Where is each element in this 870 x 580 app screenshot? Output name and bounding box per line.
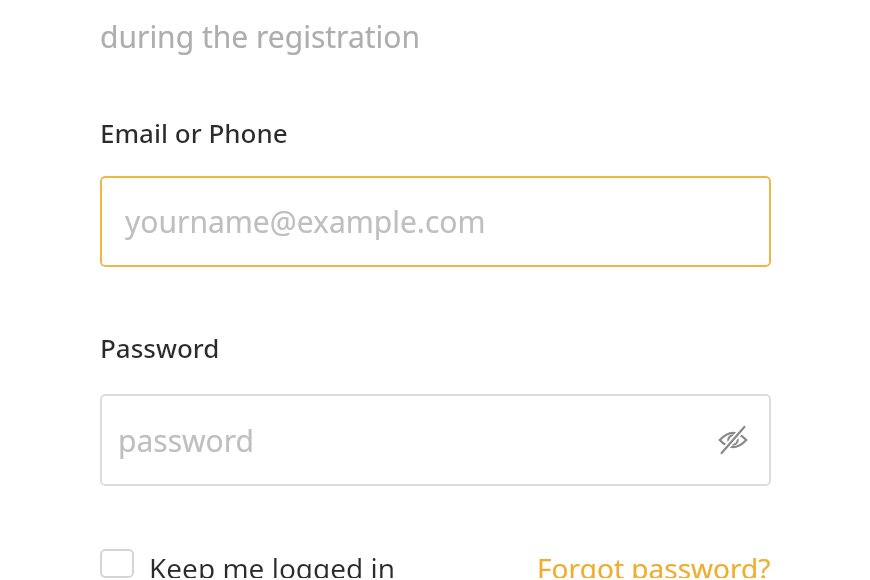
- button[interactable]: Forgot password?: [537, 547, 771, 580]
- button[interactable]: password: [100, 394, 771, 486]
- staticText: Forgot password?: [537, 549, 771, 578]
- staticText: password: [118, 420, 254, 461]
- staticText: yourname@example.com: [125, 201, 486, 242]
- staticText: Keep me logged in: [149, 549, 396, 578]
- button[interactable]: Keep me logged in: [100, 547, 396, 580]
- staticText: Email or Phone: [100, 115, 288, 150]
- staticText: during the registration: [100, 16, 420, 57]
- button[interactable]: yourname@example.com: [100, 176, 771, 267]
- staticText: Password: [100, 330, 220, 365]
- button[interactable]: Show password: [713, 420, 753, 460]
